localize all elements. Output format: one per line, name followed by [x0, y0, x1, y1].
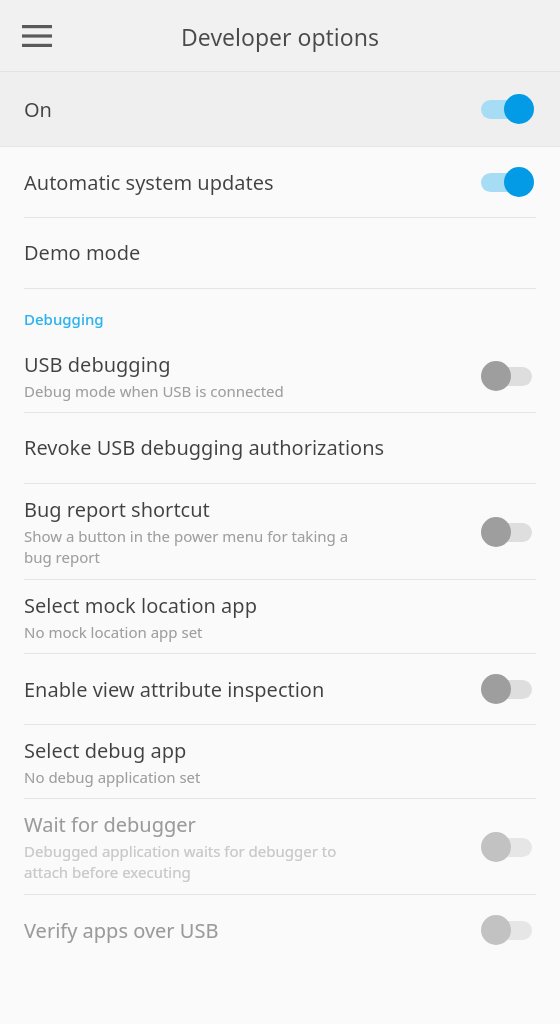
staticText: Verify apps over USB [24, 917, 219, 944]
button[interactable]: On [0, 72, 560, 146]
staticText: No mock location app set [24, 622, 203, 642]
staticText: Wait for debugger [24, 811, 196, 838]
staticText: Debugged application waits for debugger … [24, 841, 337, 883]
button[interactable]: Toggle Automatic system updates [480, 165, 536, 199]
button[interactable]: Toggle Wait for debugger [480, 830, 536, 864]
staticText: Demo mode [24, 239, 141, 266]
button[interactable]: Verify apps over USB [0, 895, 560, 965]
staticText: Show a button in the power menu for taki… [24, 526, 349, 568]
button[interactable]: Toggle Enable view attribute inspection [480, 672, 536, 706]
staticText: Select mock location app [24, 592, 257, 619]
button[interactable]: Toggle On [480, 92, 536, 126]
staticText: On [24, 96, 52, 123]
button[interactable]: USB debugging [0, 339, 560, 412]
button[interactable]: Enable view attribute inspection [0, 654, 560, 724]
button[interactable]: Toggle USB debugging [480, 359, 536, 393]
button[interactable]: Toggle Verify apps over USB [480, 913, 536, 947]
staticText: Enable view attribute inspection [24, 676, 325, 703]
button[interactable]: Revoke USB debugging authorizations [0, 413, 560, 483]
button[interactable]: Toggle Bug report shortcut [480, 515, 536, 549]
staticText: Developer options [181, 21, 379, 52]
staticText: No debug application set [24, 767, 201, 787]
staticText: Debug mode when USB is connected [24, 381, 284, 401]
staticText: Select debug app [24, 737, 187, 764]
button[interactable]: Wait for debugger [0, 799, 560, 894]
button[interactable]: Demo mode [0, 218, 560, 288]
button[interactable]: Select mock location app [0, 580, 560, 653]
staticText: Revoke USB debugging authorizations [24, 434, 385, 461]
button[interactable]: Open navigation menu [11, 10, 63, 62]
staticText: USB debugging [24, 351, 171, 378]
button[interactable]: Bug report shortcut [0, 484, 560, 579]
staticText: Debugging [24, 309, 104, 329]
staticText: Bug report shortcut [24, 496, 210, 523]
staticText: Automatic system updates [24, 169, 274, 196]
button[interactable]: Select debug app [0, 725, 560, 798]
button[interactable]: Automatic system updates [0, 147, 560, 217]
